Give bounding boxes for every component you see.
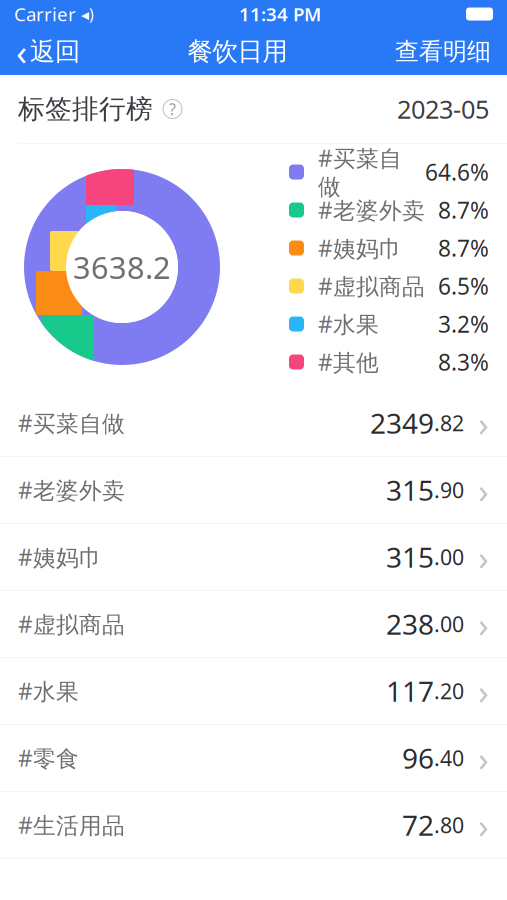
staticText: #姨妈巾 (18, 542, 102, 572)
staticText: › (478, 400, 489, 446)
staticText: 查看明细 (395, 37, 491, 66)
staticText: 8.7% (438, 233, 489, 263)
staticText: 8.7% (438, 195, 489, 225)
staticText: › (478, 802, 489, 848)
staticText: #零食 (18, 743, 79, 773)
button[interactable]: #生活用品 (0, 792, 507, 859)
staticText: #水果 (318, 309, 379, 339)
button[interactable]: #买菜自做 (0, 390, 507, 457)
staticText: #老婆外卖 (18, 475, 125, 505)
staticText: ? (169, 98, 176, 120)
staticText: #虚拟商品 (18, 609, 125, 639)
staticText: #老婆外卖 (318, 195, 425, 225)
staticText: 315 (386, 471, 434, 509)
staticText: .20 (434, 677, 464, 705)
staticText: #其他 (318, 347, 379, 377)
staticText: Carrier (14, 2, 76, 26)
staticText: 标签排行榜 (18, 93, 153, 125)
staticText: 8.3% (438, 347, 489, 377)
staticText: 3638.2 (73, 247, 171, 287)
staticText: 117 (386, 672, 434, 710)
staticText: .00 (434, 543, 464, 571)
staticText: #姨妈巾 (318, 233, 402, 263)
staticText: #买菜自做 (18, 408, 125, 438)
button[interactable]: #水果 (0, 658, 507, 725)
staticText: #买菜自做 (318, 143, 402, 201)
staticText: .40 (434, 744, 464, 772)
button[interactable]: #虚拟商品 (0, 591, 507, 658)
staticText: .80 (434, 811, 464, 839)
staticText: 96 (402, 739, 434, 777)
staticText: #水果 (18, 676, 79, 706)
staticText: › (478, 668, 489, 714)
staticText: #虚拟商品 (318, 271, 425, 301)
staticText: 11:34 PM (239, 2, 321, 26)
button[interactable]: #老婆外卖 (0, 457, 507, 524)
staticText: .82 (434, 409, 464, 437)
staticText: › (478, 534, 489, 580)
staticText: 315 (386, 538, 434, 576)
staticText: 返回 (30, 36, 80, 67)
button[interactable]: 查看明细 (379, 28, 507, 75)
staticText: ◂) (81, 3, 94, 25)
staticText: 2023-05 (397, 92, 489, 126)
button[interactable]: ‹ (0, 28, 96, 75)
button[interactable]: #零食 (0, 725, 507, 792)
staticText: ‹ (16, 28, 27, 75)
staticText: › (478, 735, 489, 781)
staticText: 2349 (370, 404, 434, 442)
staticText: 3.2% (438, 309, 489, 339)
staticText: 6.5% (438, 271, 489, 301)
button[interactable]: #姨妈巾 (0, 524, 507, 591)
staticText: .90 (434, 476, 464, 504)
button[interactable]: 说明 (153, 99, 182, 118)
staticText: 餐饮日用 (187, 36, 287, 67)
staticText: .00 (434, 610, 464, 638)
staticText: 238 (386, 605, 434, 643)
staticText: 72 (402, 806, 434, 844)
staticText: › (478, 467, 489, 513)
staticText: › (478, 601, 489, 647)
staticText: #生活用品 (18, 810, 125, 840)
staticText: 64.6% (425, 157, 489, 187)
